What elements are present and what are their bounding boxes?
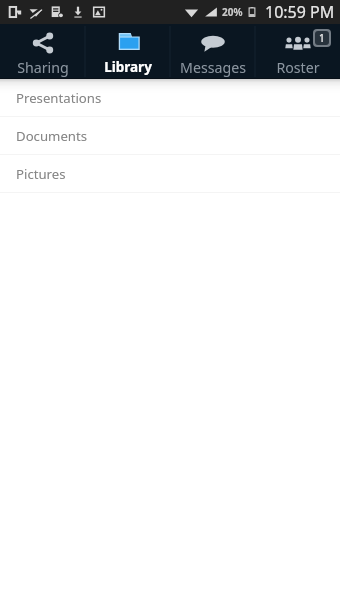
button[interactable]: Documents <box>0 117 340 155</box>
staticText: Documents <box>16 127 88 145</box>
button[interactable]: Library tab <box>85 24 170 76</box>
staticText: Roster <box>276 58 320 77</box>
staticText: Library <box>104 58 152 76</box>
button[interactable]: Pictures <box>0 155 340 193</box>
button[interactable]: Roster tab <box>255 24 340 77</box>
button[interactable]: Messages tab <box>170 24 255 77</box>
staticText: 1 <box>319 31 325 45</box>
staticText: Presentations <box>16 89 102 107</box>
button[interactable]: Presentations <box>0 79 340 117</box>
staticText: Pictures <box>16 165 66 183</box>
staticText: Messages <box>180 58 246 77</box>
staticText: 20% <box>222 5 243 19</box>
staticText: Sharing <box>17 58 69 77</box>
staticText: 10:59 PM <box>265 1 335 23</box>
button[interactable]: Sharing tab <box>0 24 85 77</box>
